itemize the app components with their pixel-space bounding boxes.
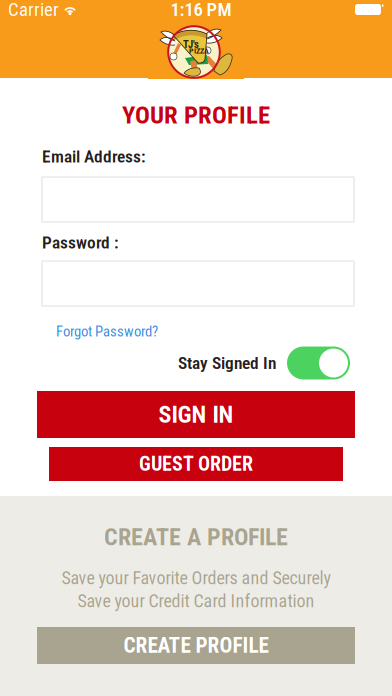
staticText: GUEST ORDER	[139, 452, 253, 476]
button[interactable]: SIGN IN	[37, 391, 355, 438]
staticText: YOUR PROFILE	[122, 100, 270, 129]
button[interactable]: Text field	[42, 177, 354, 222]
staticText: Save your Credit Card Information	[77, 590, 314, 612]
staticText: CREATE A PROFILE	[104, 523, 288, 551]
staticText: 1:16 PM	[170, 0, 231, 20]
staticText: PIZZA	[189, 46, 209, 55]
staticText: Forgot Password?	[56, 323, 158, 340]
staticText: TJ's	[183, 38, 199, 50]
staticText: Stay Signed In	[178, 353, 276, 373]
button[interactable]: Forgot Password?	[42, 324, 158, 339]
staticText: Save your Favorite Orders and Securely	[61, 567, 330, 589]
button[interactable]: CREATE PROFILE	[37, 627, 355, 664]
staticText: Password :	[42, 232, 119, 253]
button[interactable]: Text field	[42, 261, 354, 306]
staticText: Email Address:	[42, 146, 146, 167]
button[interactable]: GUEST ORDER	[49, 447, 343, 481]
staticText: Carrier	[8, 0, 59, 20]
staticText: SIGN IN	[158, 400, 233, 428]
button[interactable]: Stay Signed In	[287, 346, 350, 379]
staticText: CREATE PROFILE	[123, 633, 268, 658]
